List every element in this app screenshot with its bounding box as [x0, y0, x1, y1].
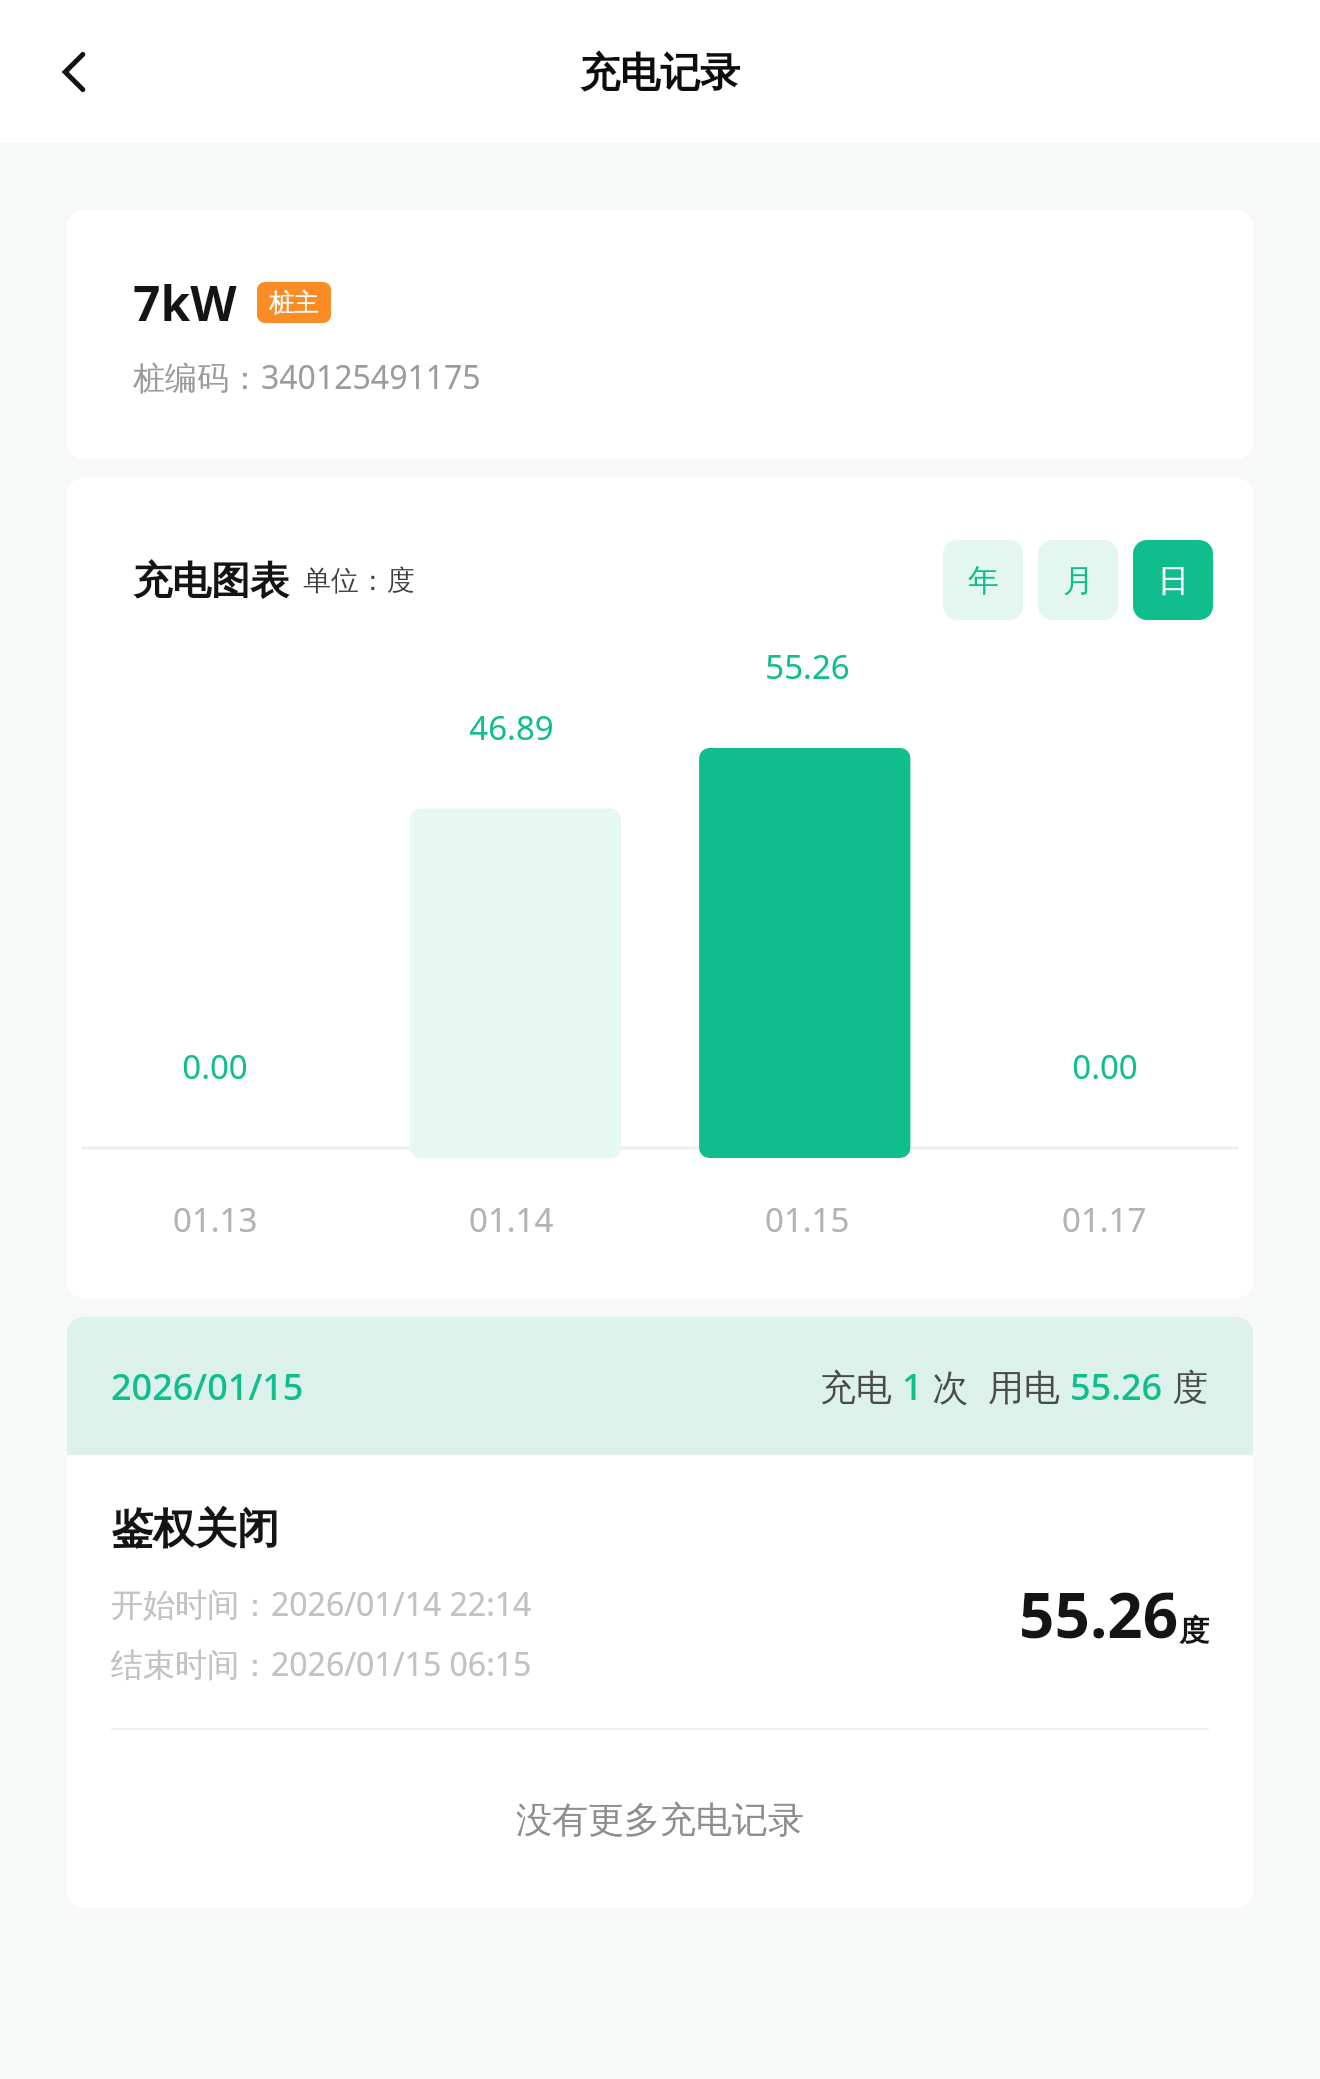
- staticText: 月: [1063, 561, 1094, 600]
- button[interactable]: 鉴权关闭: [67, 1455, 1253, 1728]
- staticText: 01.14: [469, 1197, 554, 1242]
- staticText: 01.15: [765, 1197, 850, 1242]
- staticText: 7kW: [133, 270, 237, 335]
- button[interactable]: 年: [943, 540, 1023, 620]
- staticText: 01.13: [173, 1197, 258, 1242]
- staticText: 年: [968, 561, 999, 600]
- staticText: 桩主: [269, 287, 319, 318]
- staticText: 日: [1158, 561, 1189, 600]
- staticText: 桩编码：340125491175: [133, 355, 481, 399]
- staticText: 55.26: [1070, 1362, 1163, 1411]
- staticText: 充电图表: [133, 556, 289, 605]
- staticText: 度: [1163, 1362, 1209, 1411]
- staticText: 1: [902, 1362, 923, 1411]
- staticText: 单位：度: [303, 563, 415, 598]
- staticText: 0.00: [1072, 1044, 1138, 1089]
- staticText: 0.00: [182, 1044, 248, 1089]
- staticText: 结束时间：2026/01/15 06:15: [111, 1642, 532, 1686]
- staticText: 鉴权关闭: [111, 1503, 279, 1556]
- staticText: 充电记录: [580, 47, 740, 97]
- staticText: 用电: [988, 1362, 1070, 1411]
- staticText: 2026/01/15: [111, 1362, 304, 1411]
- button[interactable]: Back: [36, 34, 112, 110]
- button[interactable]: 日: [1133, 540, 1213, 620]
- staticText: 次: [923, 1362, 988, 1411]
- staticText: 55.26: [1019, 1572, 1179, 1656]
- staticText: 度: [1179, 1612, 1209, 1650]
- staticText: 没有更多充电记录: [516, 1797, 804, 1842]
- button[interactable]: 月: [1038, 540, 1118, 620]
- staticText: 46.89: [469, 705, 554, 750]
- staticText: 01.17: [1062, 1197, 1147, 1242]
- button[interactable]: 7kW: [67, 210, 1253, 459]
- staticText: 充电: [820, 1362, 902, 1411]
- staticText: 开始时间：2026/01/14 22:14: [111, 1582, 532, 1626]
- staticText: 55.26: [765, 644, 850, 689]
